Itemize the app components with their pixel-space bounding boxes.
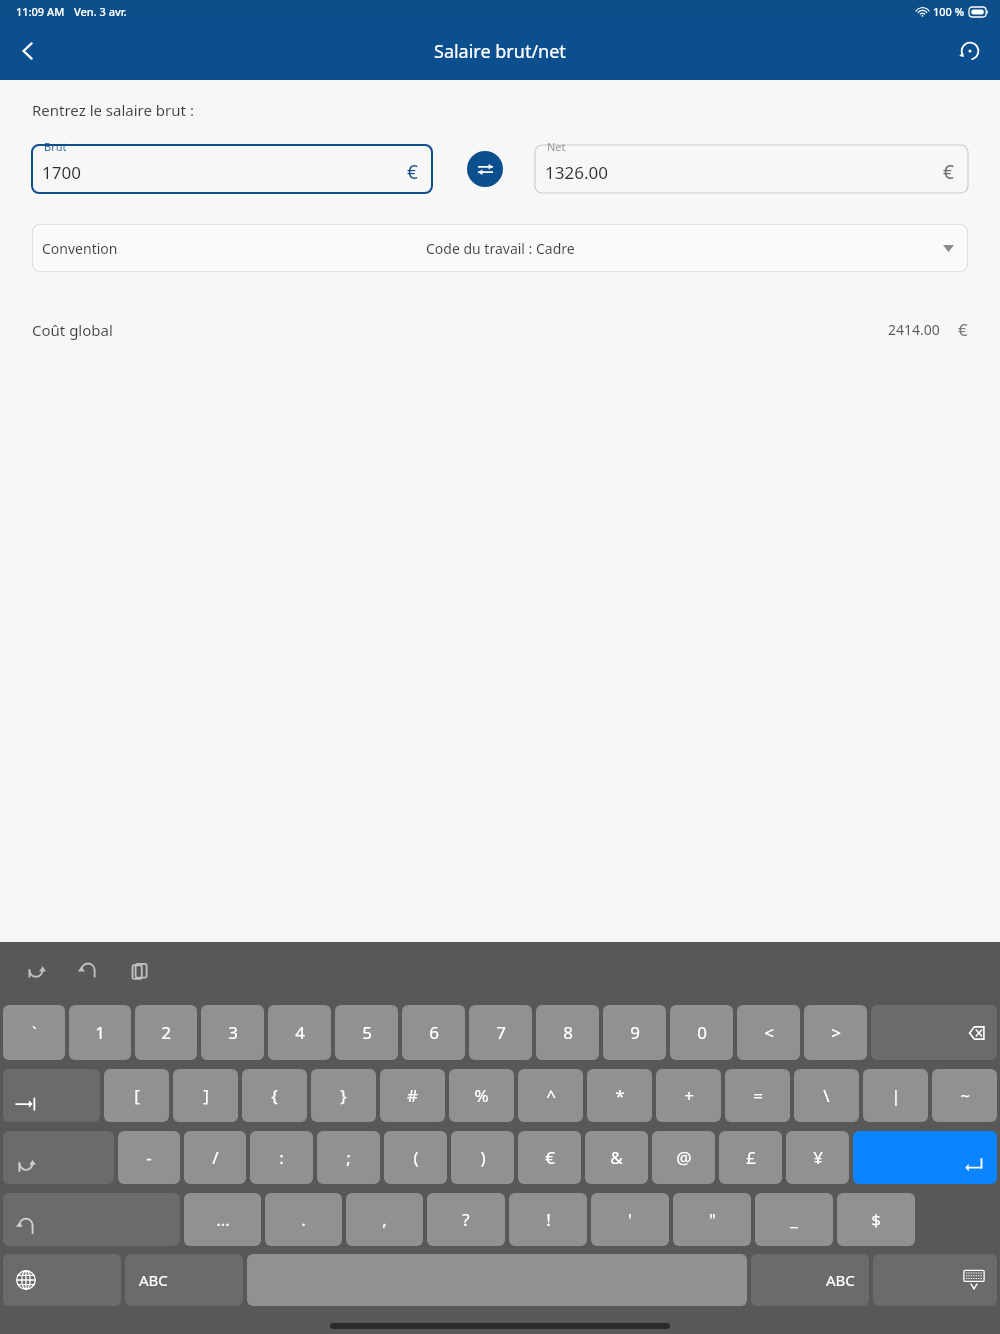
- button[interactable]: …: [184, 1193, 261, 1246]
- staticText: ): [480, 1146, 486, 1169]
- button[interactable]: 8: [536, 1005, 599, 1060]
- button[interactable]: ¥: [786, 1131, 849, 1184]
- button[interactable]: >: [804, 1005, 867, 1060]
- staticText: 7: [496, 1021, 506, 1044]
- button[interactable]: <: [737, 1005, 800, 1060]
- staticText: ?: [462, 1208, 470, 1231]
- staticText: }: [340, 1084, 347, 1107]
- staticText: @: [676, 1146, 692, 1169]
- button[interactable]: /: [184, 1131, 246, 1184]
- staticText: Net: [547, 139, 566, 154]
- staticText: …: [216, 1208, 230, 1231]
- button[interactable]: :: [250, 1131, 313, 1184]
- button[interactable]: Convention: [32, 224, 968, 272]
- staticText: ,: [382, 1208, 387, 1231]
- button[interactable]: @: [652, 1131, 715, 1184]
- button[interactable]: ): [451, 1131, 514, 1184]
- staticText: .: [301, 1208, 306, 1231]
- button[interactable]: ;: [317, 1131, 380, 1184]
- staticText: ]: [203, 1084, 209, 1107]
- button[interactable]: _: [755, 1193, 833, 1246]
- button[interactable]: .: [265, 1193, 342, 1246]
- button[interactable]: ,: [346, 1193, 423, 1246]
- button[interactable]: £: [719, 1131, 782, 1184]
- staticText: +: [684, 1084, 694, 1107]
- button[interactable]: }: [311, 1069, 376, 1122]
- button[interactable]: Shift right: [3, 1193, 180, 1246]
- button[interactable]: Enter: [853, 1131, 997, 1184]
- staticText: 9: [630, 1021, 640, 1044]
- staticText: /: [212, 1146, 219, 1169]
- button[interactable]: 5: [335, 1005, 398, 1060]
- button[interactable]: 9: [603, 1005, 666, 1060]
- staticText: Rentrez le salaire brut :: [32, 100, 194, 120]
- button[interactable]: !: [509, 1193, 587, 1246]
- staticText: =: [753, 1084, 763, 1107]
- button[interactable]: Redo: [70, 953, 106, 989]
- button[interactable]: ABC: [751, 1254, 869, 1306]
- button[interactable]: 3: [201, 1005, 264, 1060]
- button[interactable]: €: [518, 1131, 581, 1184]
- button[interactable]: ?: [427, 1193, 505, 1246]
- staticText: €: [407, 159, 418, 185]
- staticText: 11:09 AM: [16, 4, 65, 19]
- button[interactable]: %: [449, 1069, 514, 1122]
- button[interactable]: Shift: [3, 1131, 114, 1184]
- button[interactable]: Hide keyboard: [873, 1254, 997, 1306]
- button[interactable]: ~: [932, 1069, 997, 1122]
- button[interactable]: Backspace: [871, 1005, 997, 1060]
- staticText: %: [474, 1084, 489, 1107]
- button[interactable]: \: [794, 1069, 859, 1122]
- button[interactable]: #: [380, 1069, 445, 1122]
- button[interactable]: 2: [135, 1005, 197, 1060]
- button[interactable]: 4: [268, 1005, 331, 1060]
- staticText: Convention: [42, 239, 118, 258]
- button[interactable]: Swap brut and net: [467, 151, 503, 187]
- staticText: Salaire brut/net: [434, 39, 566, 64]
- button[interactable]: 0: [670, 1005, 733, 1060]
- button[interactable]: Tab: [3, 1069, 100, 1122]
- staticText: 100 %: [933, 4, 965, 19]
- button[interactable]: `: [3, 1005, 65, 1060]
- button[interactable]: =: [725, 1069, 790, 1122]
- staticText: &: [610, 1146, 623, 1169]
- button[interactable]: 7: [469, 1005, 532, 1060]
- staticText: Ven. 3 avr.: [74, 4, 127, 19]
- staticText: \: [823, 1084, 830, 1107]
- staticText: [: [134, 1084, 140, 1107]
- button[interactable]: +: [656, 1069, 721, 1122]
- button[interactable]: Undo: [18, 953, 54, 989]
- button[interactable]: {: [242, 1069, 307, 1122]
- button[interactable]: Paste: [122, 953, 158, 989]
- staticText: 6: [429, 1021, 439, 1044]
- button[interactable]: History: [948, 29, 992, 73]
- button[interactable]: -: [118, 1131, 180, 1184]
- button[interactable]: ': [591, 1193, 669, 1246]
- button[interactable]: ^: [518, 1069, 583, 1122]
- staticText: 0: [697, 1021, 707, 1044]
- button[interactable]: *: [587, 1069, 652, 1122]
- button[interactable]: |: [863, 1069, 928, 1122]
- staticText: Code du travail : Cadre: [426, 239, 575, 258]
- staticText: !: [546, 1208, 551, 1231]
- button[interactable]: Brut: [32, 145, 432, 193]
- button[interactable]: 6: [402, 1005, 465, 1060]
- staticText: ~: [960, 1084, 970, 1107]
- button[interactable]: Language: [3, 1254, 121, 1306]
- button[interactable]: (: [384, 1131, 447, 1184]
- button[interactable]: Net: [535, 145, 968, 193]
- button[interactable]: 1: [69, 1005, 131, 1060]
- button[interactable]: ABC: [125, 1254, 243, 1306]
- staticText: #: [407, 1084, 418, 1107]
- staticText: ^: [546, 1084, 556, 1107]
- button[interactable]: Back: [6, 29, 50, 73]
- button[interactable]: ": [673, 1193, 751, 1246]
- button[interactable]: &: [585, 1131, 648, 1184]
- button[interactable]: [: [104, 1069, 169, 1122]
- staticText: €: [958, 318, 968, 341]
- staticText: ': [628, 1208, 632, 1231]
- button[interactable]: ]: [173, 1069, 238, 1122]
- staticText: *: [615, 1084, 625, 1107]
- button[interactable]: $: [837, 1193, 915, 1246]
